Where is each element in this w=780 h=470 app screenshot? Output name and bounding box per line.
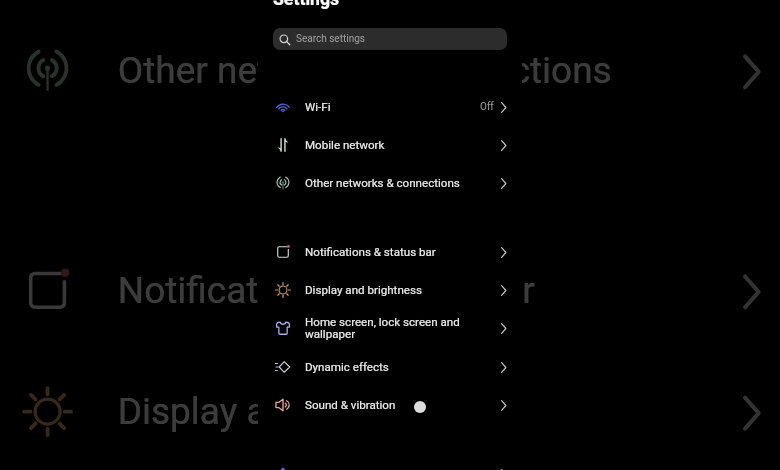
button[interactable]: Sound & vibration [258, 385, 522, 424]
staticText: Other networks & connections [305, 176, 460, 190]
button[interactable]: Notifications & status bar [0, 226, 780, 351]
button[interactable]: Notifications & status bar [258, 232, 522, 271]
button[interactable]: Other networks & connections [258, 163, 522, 202]
staticText: Sound & vibration [305, 398, 396, 412]
button[interactable]: Home screen, lock screen and wallpaper [0, 469, 780, 470]
staticText: Display and brightness [118, 389, 491, 434]
staticText: Settings [273, 0, 340, 10]
button[interactable]: Display and brightness [258, 270, 522, 309]
staticText: Off [480, 101, 494, 113]
staticText: Search settings [296, 33, 365, 45]
staticText: Display and brightness [305, 283, 422, 297]
button[interactable]: Wi-Fi [258, 87, 522, 126]
staticText: Home screen, lock screen and wallpaper [305, 315, 484, 341]
button[interactable]: Other networks & connections [0, 6, 780, 131]
button[interactable]: Home screen, lock screen and wallpaper [258, 308, 522, 347]
button[interactable]: Search settings [273, 28, 507, 50]
button[interactable]: Dynamic effects [258, 347, 522, 386]
staticText: Notifications & status bar [118, 268, 536, 313]
button[interactable]: Mobile network [0, 0, 780, 10]
staticText: Dynamic effects [305, 360, 389, 374]
staticText: Other networks & connections [118, 48, 612, 93]
staticText: Wi-Fi [305, 100, 331, 114]
button[interactable]: Display and brightness [0, 348, 780, 470]
staticText: Notifications & status bar [305, 245, 436, 259]
button[interactable]: Mobile network [258, 125, 522, 164]
staticText: Mobile network [305, 138, 385, 152]
button[interactable]: System update [258, 454, 522, 470]
